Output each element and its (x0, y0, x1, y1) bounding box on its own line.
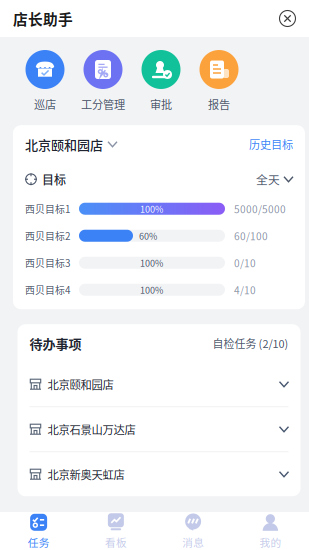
staticText: 60% (139, 229, 157, 242)
staticText: 任务 (28, 534, 50, 550)
staticText: 北京颐和园店 (47, 376, 113, 392)
staticText: 审批 (150, 96, 172, 112)
staticText: 5000/5000 (234, 201, 286, 216)
staticText: 目标 (42, 170, 66, 188)
staticText: 历史目标 (249, 136, 293, 152)
button[interactable]: 工分管理 (74, 50, 132, 112)
staticText: 4/10 (234, 282, 256, 297)
staticText: 待办事项 (29, 334, 81, 353)
button[interactable]: 巡店 (16, 50, 74, 112)
button[interactable]: 消息 (154, 508, 232, 550)
staticText: 北京新奥天虹店 (47, 466, 124, 482)
button[interactable]: 全天 (256, 171, 293, 188)
staticText: 100% (140, 283, 163, 296)
staticText: 北京石景山万达店 (47, 421, 135, 437)
staticText: 看板 (105, 534, 127, 550)
staticText: 60/100 (234, 228, 268, 243)
staticText: 店长助手 (13, 8, 73, 29)
button[interactable]: 北京颐和园店 (25, 135, 117, 154)
staticText: 西贝目标1 (25, 202, 70, 216)
button[interactable]: 任务 (0, 508, 77, 550)
button[interactable]: Close (279, 10, 296, 27)
button[interactable]: 我的 (232, 508, 309, 550)
button[interactable]: 看板 (77, 508, 154, 550)
staticText: 我的 (259, 534, 281, 550)
button[interactable]: 报告 (190, 50, 248, 112)
staticText: 报告 (208, 96, 230, 112)
staticText: 100% (140, 202, 163, 215)
button[interactable]: 历史目标 (249, 136, 293, 152)
staticText: 0/10 (234, 255, 256, 270)
button[interactable]: 审批 (132, 50, 190, 112)
staticText: 西贝目标2 (25, 229, 70, 243)
button[interactable]: 北京颐和园店 (17, 362, 300, 406)
staticText: 全天 (256, 171, 280, 188)
staticText: 北京颐和园店 (25, 135, 103, 154)
staticText: 工分管理 (81, 96, 125, 112)
staticText: 消息 (182, 534, 204, 550)
button[interactable]: 北京新奥天虹店 (17, 452, 300, 496)
staticText: 巡店 (34, 96, 56, 112)
staticText: 100% (140, 256, 163, 269)
staticText: 自检任务 (2/10) (212, 335, 288, 351)
button[interactable]: 北京石景山万达店 (17, 407, 300, 451)
staticText: 西贝目标3 (25, 256, 70, 270)
staticText: 西贝目标4 (25, 283, 70, 297)
